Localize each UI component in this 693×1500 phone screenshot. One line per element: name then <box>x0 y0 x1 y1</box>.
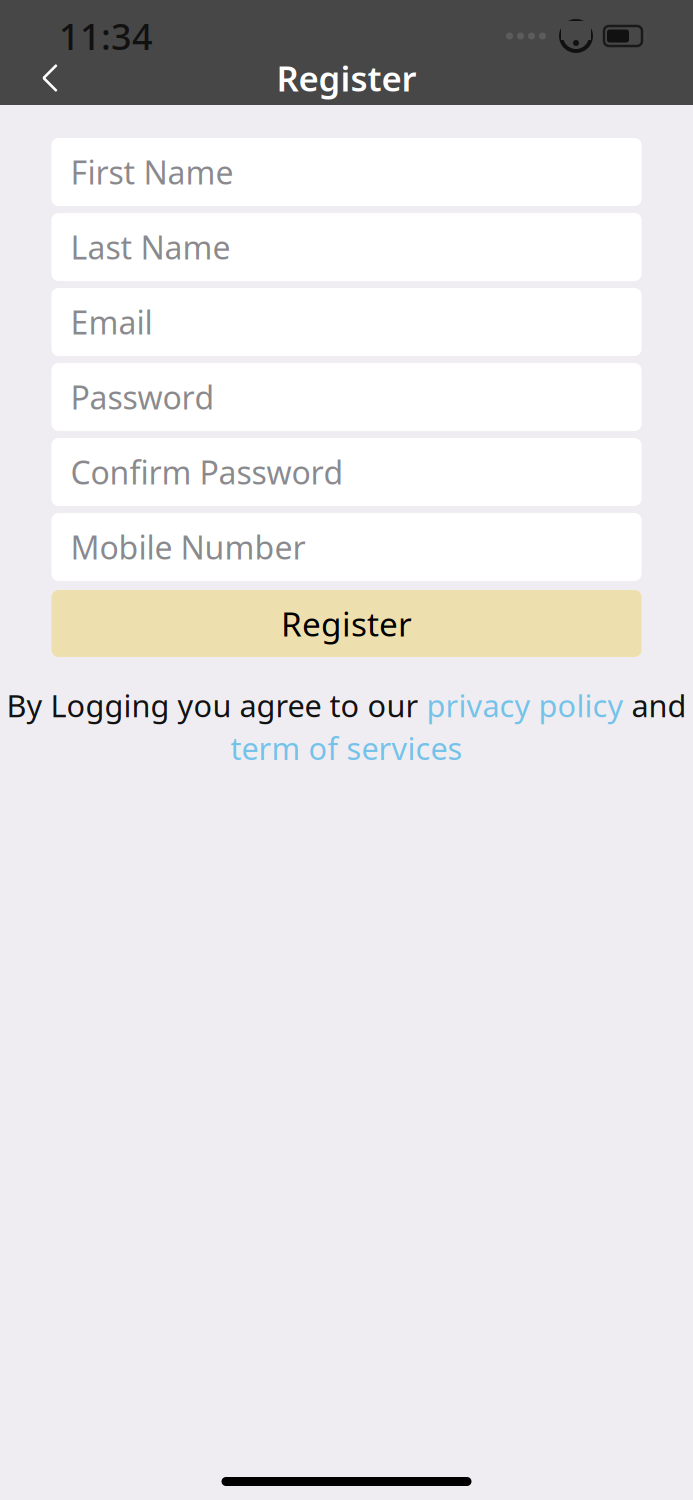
staticText: privacy policy <box>426 685 623 726</box>
button[interactable]: privacy policy <box>426 685 623 726</box>
button[interactable]: Password <box>51 363 641 431</box>
staticText: Register <box>281 601 412 646</box>
button[interactable]: Register <box>51 590 641 657</box>
staticText: and <box>623 685 686 726</box>
button[interactable]: First Name <box>51 138 641 206</box>
button[interactable]: term of services <box>230 728 462 768</box>
staticText: First Name <box>70 151 233 193</box>
staticText: Mobile Number <box>70 526 305 568</box>
staticText: Password <box>70 376 214 418</box>
staticText: 11:34 <box>59 12 153 60</box>
staticText: Email <box>70 301 152 343</box>
staticText: Register <box>276 55 416 101</box>
staticText: Last Name <box>70 226 230 268</box>
button[interactable]: Last Name <box>51 213 641 281</box>
staticText: term of services <box>230 728 462 768</box>
button[interactable]: Email <box>51 288 641 356</box>
staticText: By Logging you agree to our <box>6 685 426 726</box>
button[interactable]: Mobile Number <box>51 513 641 581</box>
button[interactable]: Confirm Password <box>51 438 641 506</box>
button[interactable]: Back <box>22 54 78 102</box>
staticText: Confirm Password <box>70 451 343 493</box>
